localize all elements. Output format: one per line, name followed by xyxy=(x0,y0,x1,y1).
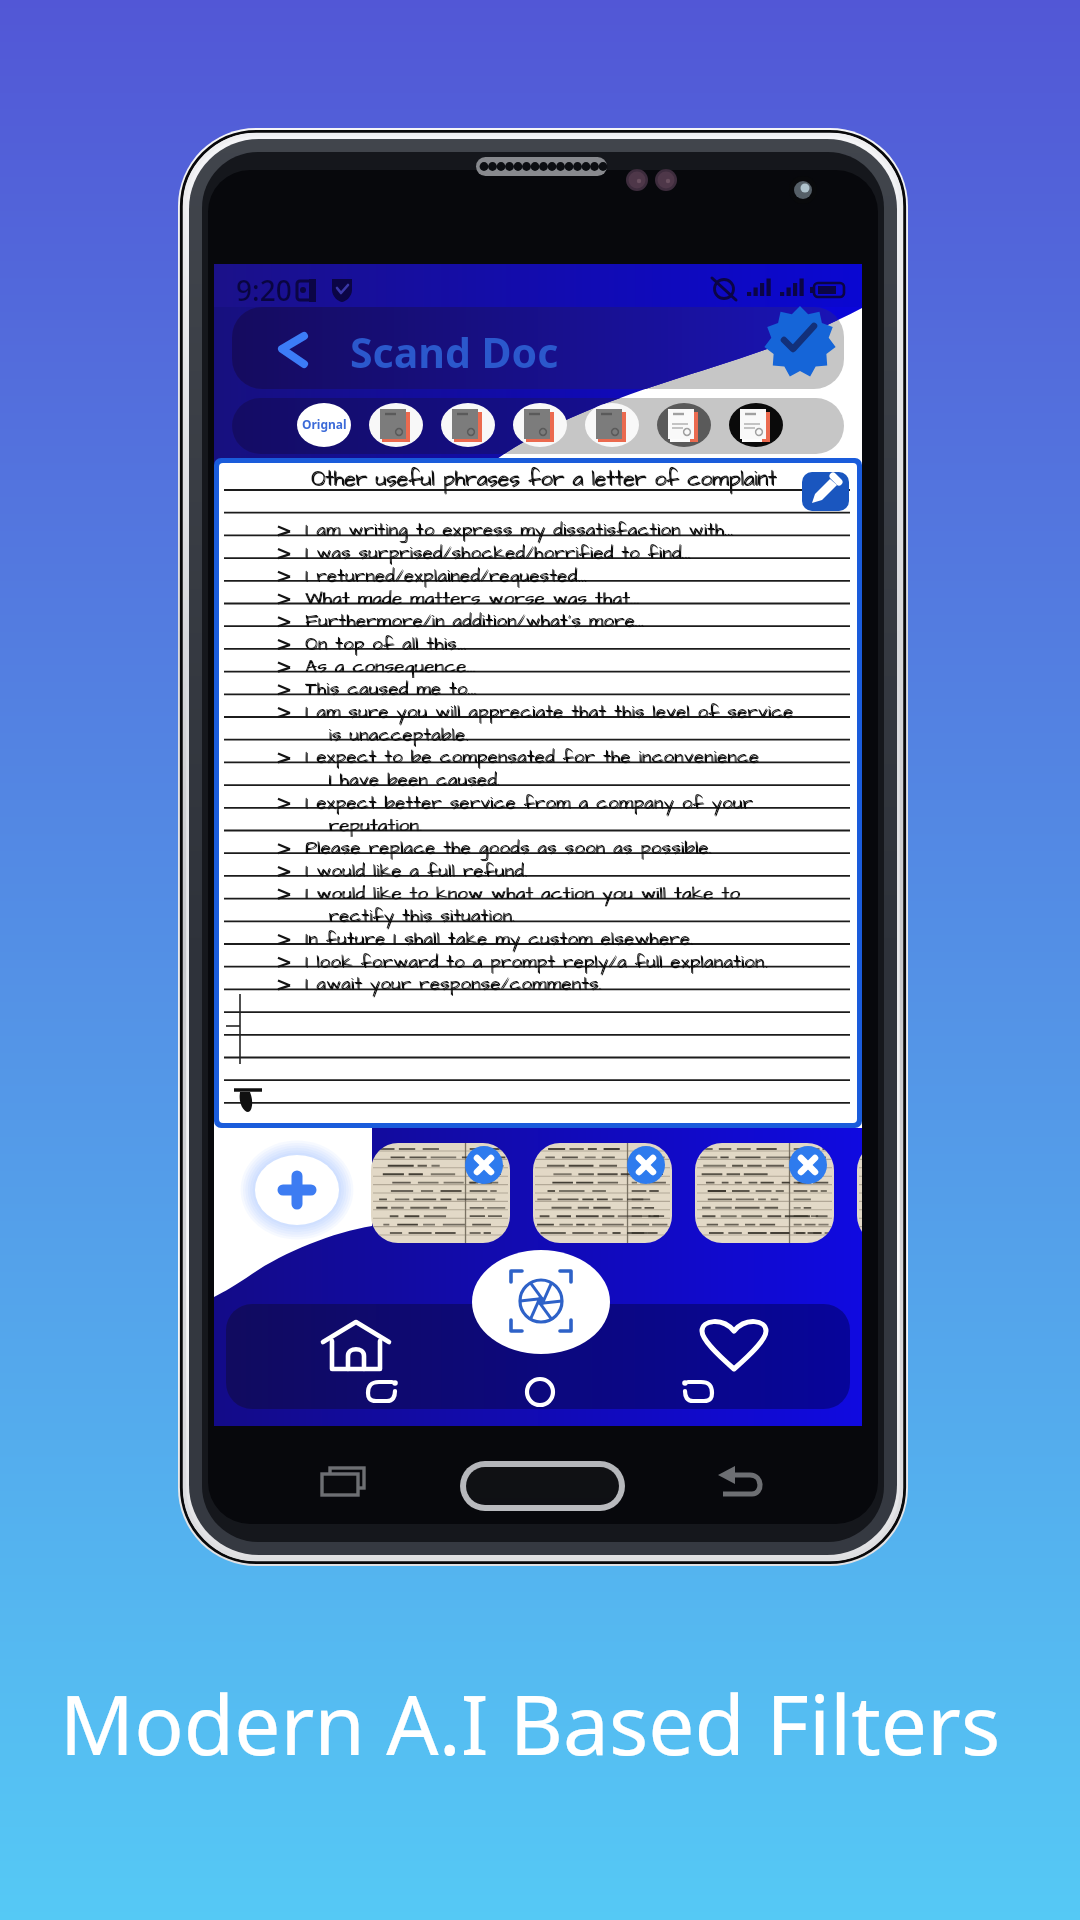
staticText: Scand Doc xyxy=(350,324,559,380)
staticText: reputation. xyxy=(305,813,422,838)
staticText: What made matters worse was that... xyxy=(306,586,641,611)
staticText: I look forward to a prompt reply/a full … xyxy=(306,950,769,975)
staticText: I look forward to a prompt reply/a full … xyxy=(305,949,768,974)
staticText: In future I shall take my custom elsewhe… xyxy=(306,927,695,952)
staticText: This caused me to... xyxy=(306,677,478,702)
staticText: I am writing to express my dissatisfacti… xyxy=(306,518,735,543)
staticText: rectify this situation. xyxy=(306,904,517,929)
staticText: I expect better service from a company o… xyxy=(305,790,753,815)
button[interactable]: Filter 1 xyxy=(297,403,351,447)
staticText: is unacceptable. xyxy=(306,723,470,748)
staticText: Furthermore/in addition/what's more... xyxy=(305,608,645,633)
button[interactable]: Scan xyxy=(472,1250,610,1354)
button[interactable]: Filter 2 xyxy=(369,403,423,447)
button[interactable] xyxy=(232,307,844,389)
staticText: Orignal xyxy=(302,416,347,432)
button[interactable]: Filter 7 xyxy=(729,403,783,447)
staticText: I am sure you will appreciate that this … xyxy=(305,699,794,724)
staticText: On top of all this... xyxy=(305,631,467,656)
button[interactable]: Filter 4 xyxy=(513,403,567,447)
staticText: Please replace the goods as soon as poss… xyxy=(305,835,712,860)
staticText: I expect better service from a company o… xyxy=(306,791,754,816)
staticText: I await your response/comments. xyxy=(305,971,602,996)
staticText: I was surprised/shocked/horrified to fin… xyxy=(306,541,692,566)
staticText: I have been caused. xyxy=(306,768,502,793)
staticText: I would like to know what action you wil… xyxy=(306,881,741,906)
staticText: As a consequence... xyxy=(305,654,476,679)
staticText: This caused me to... xyxy=(305,676,477,701)
staticText: Modern A.I Based Filters xyxy=(0,1667,1070,1779)
button[interactable]: Home xyxy=(310,1310,400,1388)
button[interactable]: Page 3 xyxy=(694,1140,836,1244)
staticText: I expect to be compensated for the incon… xyxy=(306,745,761,770)
staticText: I would like a full refund. xyxy=(306,859,529,884)
staticText: Please replace the goods as soon as poss… xyxy=(306,836,713,861)
button[interactable]: Edit xyxy=(802,472,850,512)
button[interactable]: Filter 3 xyxy=(441,403,495,447)
staticText: On top of all this... xyxy=(306,632,468,657)
staticText: I was surprised/shocked/horrified to fin… xyxy=(305,540,691,565)
staticText: As a consequence... xyxy=(306,654,477,679)
staticText: rectify this situation. xyxy=(305,903,516,928)
staticText: I await your response/comments. xyxy=(306,972,603,997)
button[interactable]: Verified xyxy=(764,310,836,382)
staticText: I returned/explained/requested... xyxy=(305,563,587,588)
staticText: is unacceptable. xyxy=(305,722,469,747)
staticText: In future I shall take my custom elsewhe… xyxy=(305,926,694,951)
staticText: I am writing to express my dissatisfacti… xyxy=(305,517,734,542)
staticText: reputation. xyxy=(306,813,423,838)
staticText: What made matters worse was that... xyxy=(305,586,640,611)
button[interactable]: Back xyxy=(264,318,322,376)
button[interactable]: Favourites xyxy=(689,1310,779,1388)
staticText: 9:20 xyxy=(236,271,292,309)
button[interactable]: Filter 5 xyxy=(585,403,639,447)
staticText: I would like a full refund. xyxy=(305,858,528,883)
staticText: Other useful phrases for a letter of com… xyxy=(312,465,778,494)
staticText: Furthermore/in addition/what's more... xyxy=(306,609,646,634)
button[interactable]: Page 1 xyxy=(370,1140,512,1244)
button[interactable]: Add page xyxy=(255,1155,339,1225)
button[interactable]: Page 4 xyxy=(856,1140,862,1244)
button[interactable]: Filter 6 xyxy=(657,403,711,447)
staticText: I have been caused. xyxy=(305,767,501,792)
button[interactable]: Page 2 xyxy=(532,1140,674,1244)
staticText: I returned/explained/requested... xyxy=(306,564,588,589)
staticText: I expect to be compensated for the incon… xyxy=(305,744,760,769)
staticText: I am sure you will appreciate that this … xyxy=(306,700,795,725)
staticText: I would like to know what action you wil… xyxy=(305,881,740,906)
staticText: Other useful phrases for a letter of com… xyxy=(311,464,777,493)
